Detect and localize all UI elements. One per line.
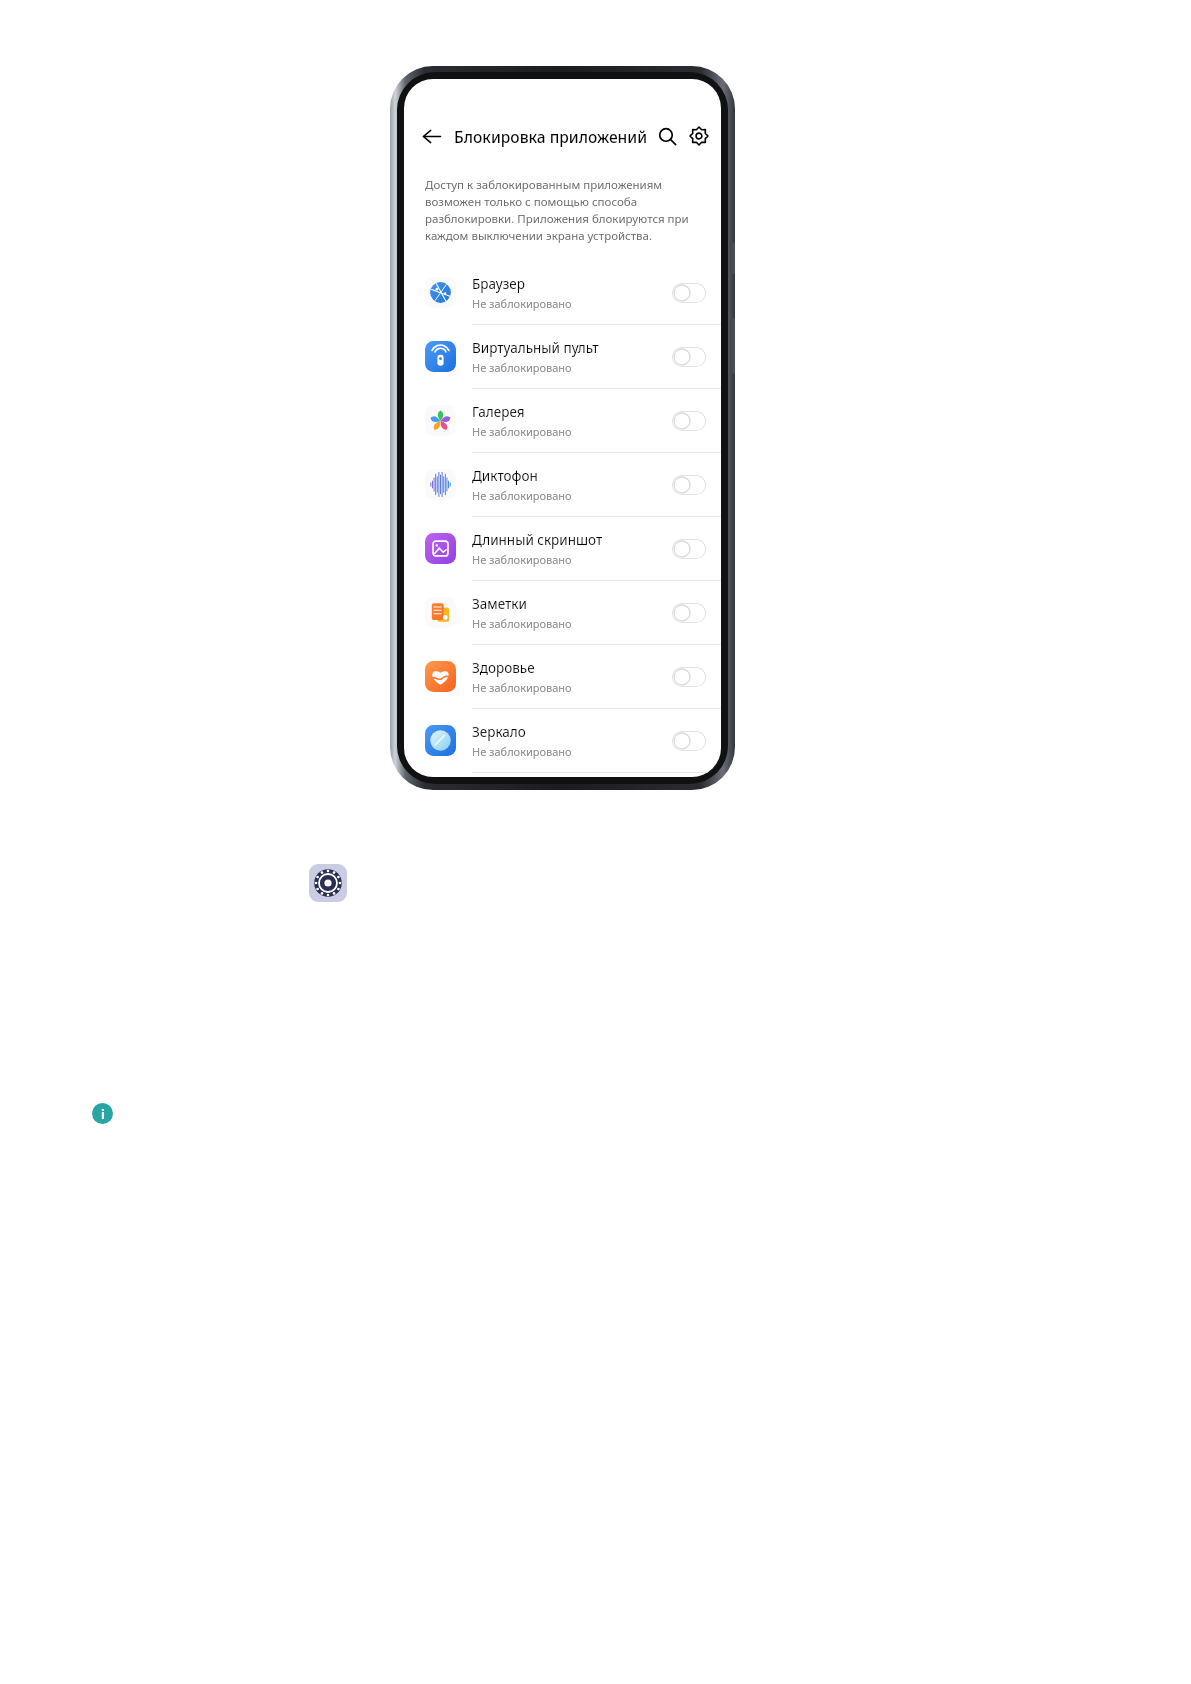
staticText: Не заблокировано <box>472 360 572 375</box>
button[interactable]: Info <box>92 1103 113 1124</box>
button[interactable]: Длинный скриншот <box>404 517 721 581</box>
button[interactable]: Зеркало <box>404 709 721 773</box>
button[interactable]: Toggle Виртуальный пульт <box>672 347 706 367</box>
staticText: Не заблокировано <box>472 424 572 439</box>
staticText: Виртуальный пульт <box>472 339 599 357</box>
staticText: Диктофон <box>472 467 538 485</box>
button[interactable]: Settings <box>309 864 347 902</box>
button[interactable]: Toggle Заметки <box>672 603 706 623</box>
staticText: Заметки <box>472 595 527 613</box>
staticText: Не заблокировано <box>472 296 572 311</box>
button[interactable]: Toggle Диктофон <box>672 475 706 495</box>
staticText: Галерея <box>472 403 525 421</box>
button[interactable]: Toggle Здоровье <box>672 667 706 687</box>
staticText: Не заблокировано <box>472 680 572 695</box>
staticText: Длинный скриншот <box>472 531 603 549</box>
button[interactable]: Toggle Галерея <box>672 411 706 431</box>
staticText: Браузер <box>472 275 525 293</box>
staticText: Не заблокировано <box>472 552 572 567</box>
staticText: i <box>101 1105 105 1123</box>
staticText: Блокировка приложений <box>454 126 648 147</box>
button[interactable]: Диктофон <box>404 453 721 517</box>
button[interactable]: Галерея <box>404 389 721 453</box>
button[interactable]: Здоровье <box>404 645 721 709</box>
staticText: Не заблокировано <box>472 616 572 631</box>
staticText: Здоровье <box>472 659 535 677</box>
staticText: Не заблокировано <box>472 488 572 503</box>
button[interactable]: Заметки <box>404 581 721 645</box>
button[interactable]: Виртуальный пульт <box>404 325 721 389</box>
staticText: Доступ к заблокированным приложениям воз… <box>425 177 711 243</box>
button[interactable]: Toggle Зеркало <box>672 731 706 751</box>
button[interactable]: Toggle Длинный скриншот <box>672 539 706 559</box>
staticText: Зеркало <box>472 723 526 741</box>
button[interactable]: Settings <box>686 117 712 155</box>
button[interactable]: Toggle Браузер <box>672 283 706 303</box>
button[interactable]: Back <box>411 116 451 156</box>
button[interactable]: Браузер <box>404 261 721 325</box>
staticText: Не заблокировано <box>472 744 572 759</box>
button[interactable]: Search <box>648 117 686 155</box>
